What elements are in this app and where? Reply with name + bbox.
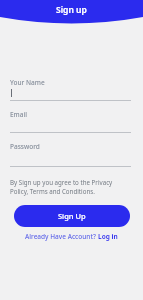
staticText: Password	[10, 142, 40, 151]
button[interactable]: Already Have Account?	[0, 232, 143, 241]
button[interactable]: Sign Up	[14, 205, 130, 227]
staticText: Sign up	[56, 4, 87, 16]
button[interactable]: Your Name	[10, 87, 131, 101]
button[interactable]: Password	[10, 151, 131, 167]
staticText: Sign Up	[58, 211, 86, 221]
button[interactable]: Sign up	[0, 0, 143, 19]
staticText: Email	[10, 110, 28, 119]
staticText: Already Have Account?	[25, 232, 98, 241]
staticText: Log in	[98, 232, 118, 241]
button[interactable]: Email	[10, 119, 131, 133]
staticText: Your Name	[10, 78, 45, 87]
staticText: By Sign up you agree to the Privacy Poli…	[10, 178, 113, 196]
